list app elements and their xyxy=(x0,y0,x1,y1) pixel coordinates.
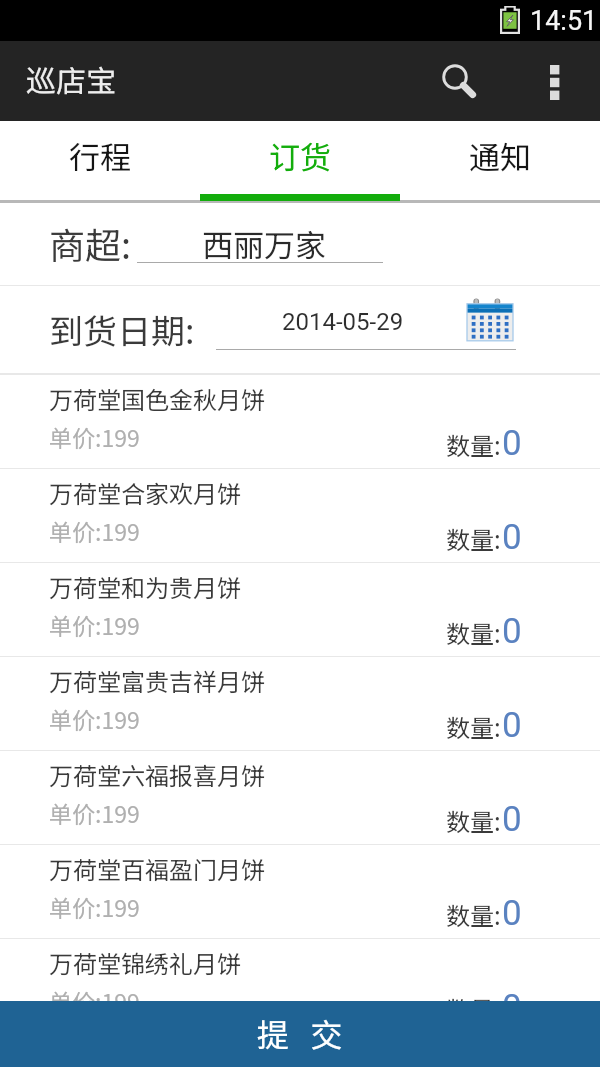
staticText: 14:51 xyxy=(530,5,598,37)
staticText: 0 xyxy=(502,987,522,1028)
staticText: 数量: xyxy=(446,803,501,838)
button[interactable]: 通知 xyxy=(400,121,600,203)
button[interactable]: More options xyxy=(525,41,585,121)
button[interactable]: 2014-05-29 xyxy=(216,306,516,350)
button[interactable]: 商超: xyxy=(0,203,600,286)
staticText: 万荷堂六福报喜月饼 xyxy=(49,757,265,792)
button[interactable]: 万荷堂锦绣礼月饼 xyxy=(0,938,600,1032)
staticText: 数量: xyxy=(446,521,501,556)
staticText: 到货日期: xyxy=(49,305,195,354)
staticText: 数量: xyxy=(446,897,501,932)
staticText: 单价:199 xyxy=(49,984,140,1017)
staticText: 单价:199 xyxy=(49,608,140,641)
button[interactable]: Pick date xyxy=(463,295,519,345)
button[interactable]: 提 交 xyxy=(0,1001,600,1067)
staticText: 万荷堂锦绣礼月饼 xyxy=(49,945,241,980)
staticText: 0 xyxy=(502,705,522,746)
staticText: 商超: xyxy=(49,217,132,269)
staticText: 提 交 xyxy=(257,1010,343,1056)
button[interactable]: Search xyxy=(425,41,495,121)
staticText: 0 xyxy=(502,799,522,840)
staticText: 巡店宝 xyxy=(26,57,116,100)
staticText: 单价:199 xyxy=(49,796,140,829)
staticText: 万荷堂和为贵月饼 xyxy=(49,569,241,604)
button[interactable]: 订货 xyxy=(200,121,400,203)
staticText: 单价:199 xyxy=(49,890,140,923)
staticText: 0 xyxy=(502,517,522,558)
staticText: 西丽万家 xyxy=(202,221,326,263)
button[interactable]: 万荷堂合家欢月饼 xyxy=(0,468,600,562)
staticText: 万荷堂富贵吉祥月饼 xyxy=(49,663,265,698)
button[interactable]: 万荷堂六福报喜月饼 xyxy=(0,750,600,844)
staticText: 0 xyxy=(502,893,522,934)
button[interactable]: 万荷堂国色金秋月饼 xyxy=(0,374,600,468)
staticText: 数量: xyxy=(446,709,501,744)
button[interactable]: 万荷堂百福盈门月饼 xyxy=(0,844,600,938)
staticText: 订货 xyxy=(269,133,331,178)
staticText: 万荷堂百福盈门月饼 xyxy=(49,851,265,886)
staticText: 万荷堂国色金秋月饼 xyxy=(49,381,265,416)
staticText: 数量: xyxy=(446,615,501,650)
staticText: 单价:199 xyxy=(49,702,140,735)
button[interactable]: 万荷堂富贵吉祥月饼 xyxy=(0,656,600,750)
staticText: 数量: xyxy=(446,991,501,1026)
staticText: 单价:199 xyxy=(49,420,140,453)
staticText: 0 xyxy=(502,611,522,652)
staticText: 行程 xyxy=(69,133,131,178)
staticText: 万荷堂合家欢月饼 xyxy=(49,475,241,510)
staticText: 通知 xyxy=(469,133,531,178)
button[interactable]: 万荷堂团圆月饼 xyxy=(0,1032,600,1067)
staticText: 单价:199 xyxy=(49,514,140,547)
staticText: 0 xyxy=(502,423,522,464)
button[interactable]: 行程 xyxy=(0,121,200,203)
button[interactable]: 万荷堂和为贵月饼 xyxy=(0,562,600,656)
staticText: 2014-05-29 xyxy=(282,308,404,336)
staticText: 数量: xyxy=(446,427,501,462)
